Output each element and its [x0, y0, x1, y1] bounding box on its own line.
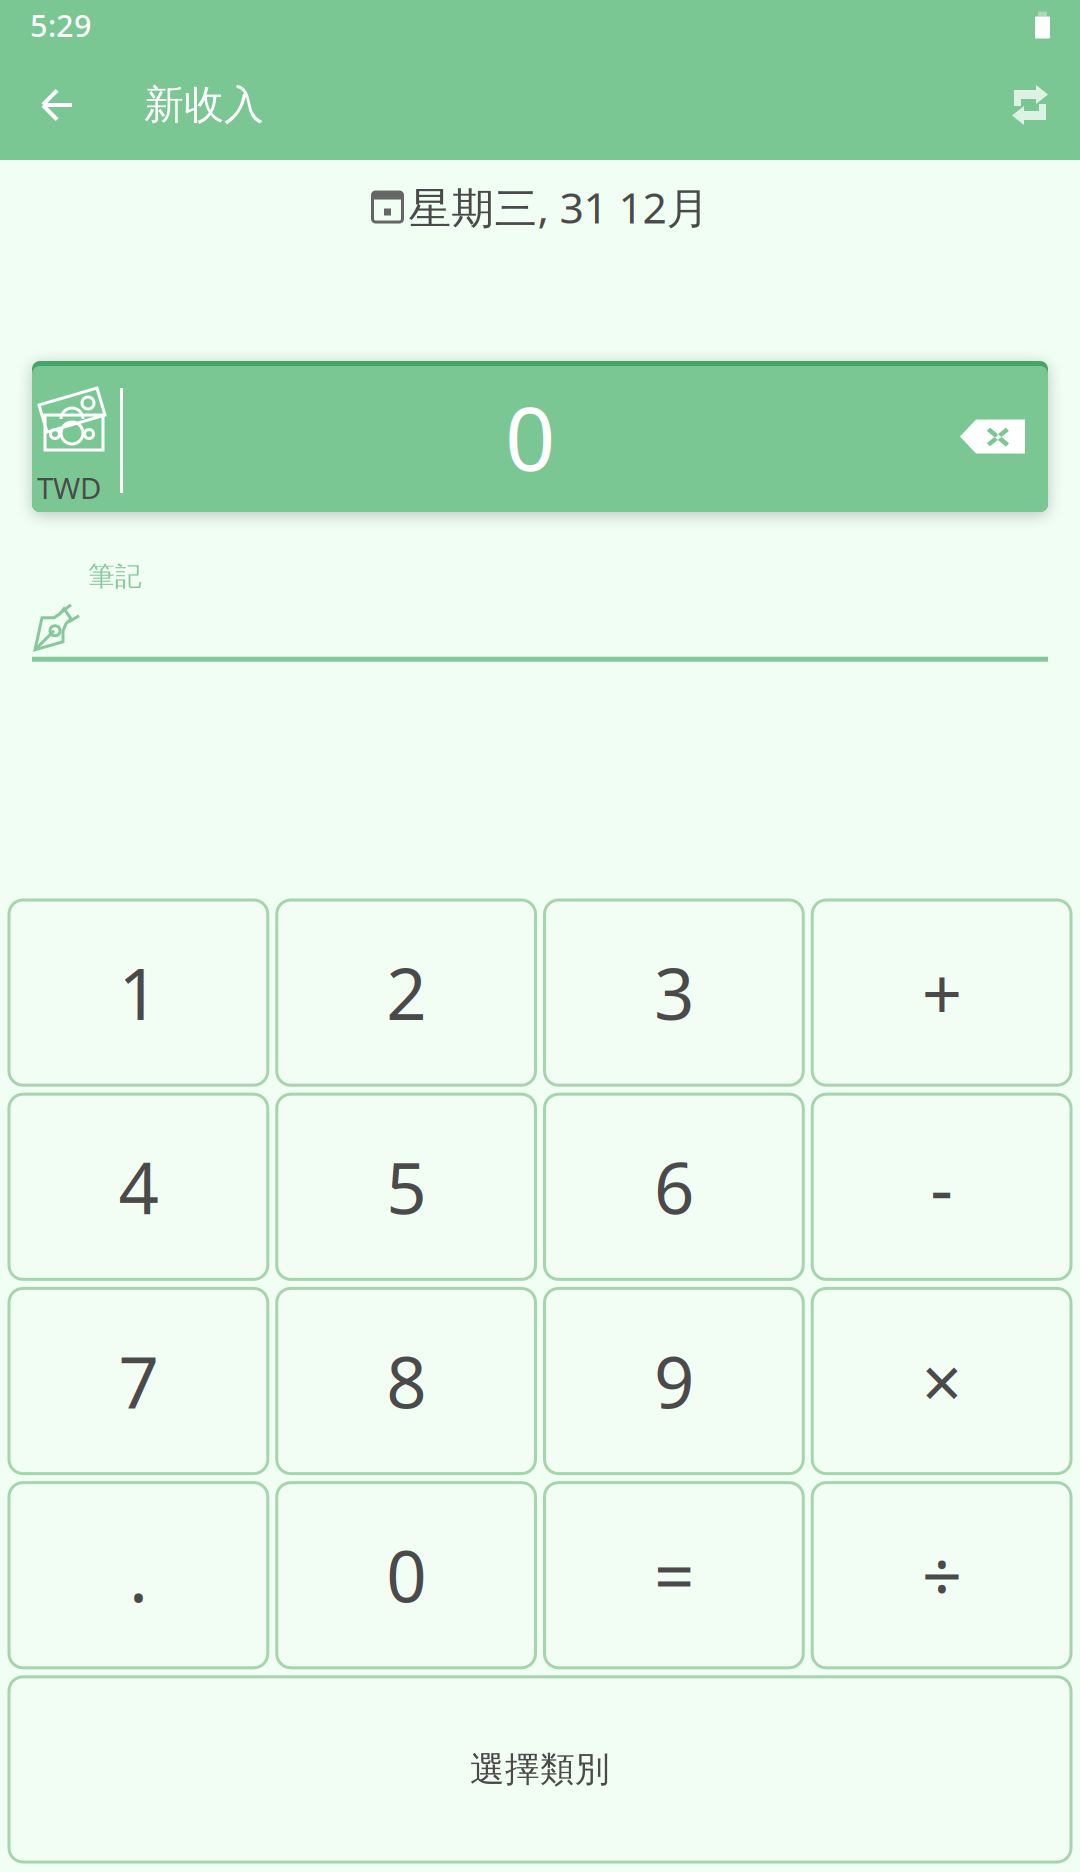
button[interactable]: 8: [277, 1288, 536, 1474]
button[interactable]: -: [812, 1094, 1071, 1279]
staticText: 8: [386, 1334, 426, 1428]
button[interactable]: =: [544, 1483, 803, 1668]
button[interactable]: 3: [544, 900, 803, 1085]
staticText: 0: [386, 1528, 426, 1622]
button[interactable]: 5: [277, 1094, 536, 1279]
button[interactable]: ×: [812, 1288, 1071, 1474]
button[interactable]: 4: [9, 1094, 268, 1279]
staticText: 5:29: [30, 5, 92, 45]
staticText: 7: [118, 1334, 158, 1428]
staticText: -: [930, 1140, 953, 1234]
staticText: 3: [654, 946, 694, 1039]
button[interactable]: Back: [20, 55, 92, 155]
staticText: =: [654, 1528, 694, 1622]
staticText: ×: [922, 1334, 962, 1428]
staticText: 新收入: [144, 80, 264, 129]
staticText: +: [922, 946, 962, 1039]
button[interactable]: 6: [544, 1094, 803, 1279]
button[interactable]: 筆記: [0, 512, 1080, 662]
staticText: 星期三, 31 12月: [408, 179, 709, 235]
staticText: 5: [386, 1140, 426, 1234]
staticText: 2: [386, 946, 426, 1039]
button[interactable]: 1: [9, 900, 268, 1085]
staticText: TWD: [37, 468, 101, 507]
staticText: 0: [505, 378, 555, 495]
staticText: 筆記: [88, 560, 142, 593]
staticText: ÷: [922, 1528, 962, 1622]
button[interactable]: 2: [277, 900, 536, 1085]
button[interactable]: +: [812, 900, 1071, 1085]
staticText: 9: [654, 1334, 694, 1428]
button[interactable]: 星期三, 31 12月: [0, 160, 1080, 254]
button[interactable]: 7: [9, 1288, 268, 1474]
button[interactable]: 選擇類別: [9, 1677, 1071, 1862]
button[interactable]: 9: [544, 1288, 803, 1474]
staticText: 6: [654, 1140, 694, 1234]
staticText: .: [129, 1528, 148, 1622]
staticText: 1: [118, 946, 158, 1039]
button[interactable]: Delete: [940, 376, 1045, 496]
button[interactable]: .: [9, 1483, 268, 1668]
staticText: 選擇類別: [470, 1748, 610, 1791]
button[interactable]: 0: [277, 1483, 536, 1668]
button[interactable]: ÷: [812, 1483, 1071, 1668]
staticText: 4: [118, 1140, 158, 1234]
button[interactable]: Repeat: [994, 55, 1066, 155]
